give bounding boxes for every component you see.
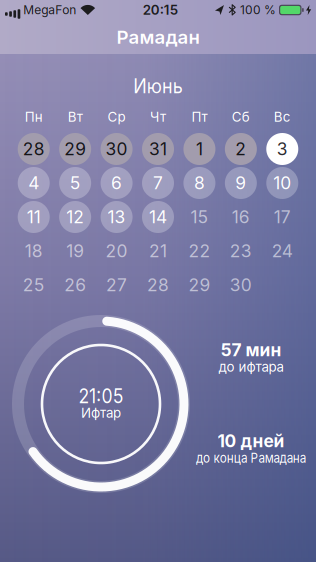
staticText: Вс [274, 109, 291, 125]
button[interactable]: 31 [137, 132, 179, 166]
staticText: Чт [150, 109, 166, 125]
button[interactable]: 2 [220, 132, 261, 166]
staticText: до ифтара [218, 359, 283, 375]
staticText: 22 [188, 241, 210, 261]
staticText: 11 [27, 207, 41, 227]
button[interactable]: 5 [54, 166, 96, 200]
button[interactable]: 4 [13, 166, 54, 200]
button[interactable]: 26 [54, 268, 96, 302]
button[interactable]: 17 [262, 200, 303, 234]
staticText: 31 [149, 139, 167, 159]
button[interactable]: 28 [13, 132, 54, 166]
staticText: Пт [191, 109, 207, 125]
staticText: 20 [106, 241, 128, 261]
staticText: 27 [106, 275, 127, 295]
staticText: 19 [66, 241, 84, 261]
staticText: 100 % [240, 3, 276, 17]
staticText: 29 [188, 275, 210, 295]
staticText: 57 мин [220, 340, 281, 360]
button[interactable]: 19 [54, 234, 96, 268]
staticText: 17 [274, 207, 291, 227]
staticText: 6 [111, 173, 122, 193]
staticText: 1 [196, 139, 203, 159]
button[interactable]: 18 [13, 234, 54, 268]
staticText: 14 [149, 207, 167, 227]
button[interactable]: 30 [96, 132, 137, 166]
staticText: Рамадан [116, 26, 199, 48]
button[interactable]: 16 [220, 200, 261, 234]
staticText: Вт [68, 109, 83, 125]
staticText: 7 [153, 173, 163, 193]
button[interactable]: 6 [96, 166, 137, 200]
staticText: 10 дней [217, 431, 284, 451]
staticText: 3 [277, 139, 288, 159]
staticText: 15 [190, 207, 208, 227]
button[interactable]: 3 [262, 132, 303, 166]
button[interactable]: 25 [13, 268, 54, 302]
button[interactable]: 20 [96, 234, 137, 268]
staticText: Июнь [130, 74, 185, 98]
staticText: 18 [25, 241, 43, 261]
button[interactable]: 8 [179, 166, 220, 200]
staticText: 29 [64, 139, 86, 159]
button[interactable]: 1 [179, 132, 220, 166]
button[interactable]: 30 [220, 268, 261, 302]
staticText: MegaFon [23, 3, 76, 17]
staticText: до конца Рамадана [188, 450, 313, 466]
button[interactable]: 10 [262, 166, 303, 200]
button[interactable]: 28 [137, 268, 179, 302]
button[interactable]: 12 [54, 200, 96, 234]
staticText: 10 [273, 173, 291, 193]
staticText: 21 [149, 241, 167, 261]
button[interactable]: 24 [262, 234, 303, 268]
button[interactable]: 27 [96, 268, 137, 302]
staticText: 20:15 [143, 2, 178, 18]
staticText: Ифтар [81, 405, 121, 421]
staticText: 9 [235, 173, 246, 193]
button[interactable]: 13 [96, 200, 137, 234]
staticText: 30 [106, 139, 128, 159]
staticText: 26 [64, 275, 86, 295]
staticText: 13 [108, 207, 126, 227]
staticText: 30 [230, 275, 252, 295]
button[interactable]: 23 [220, 234, 261, 268]
staticText: Сб [232, 109, 250, 125]
staticText: 23 [230, 241, 252, 261]
button[interactable]: 7 [137, 166, 179, 200]
staticText: 4 [28, 173, 39, 193]
staticText: 5 [70, 173, 81, 193]
staticText: 8 [194, 173, 205, 193]
button[interactable]: 29 [54, 132, 96, 166]
button[interactable]: 14 [137, 200, 179, 234]
staticText: 12 [66, 207, 84, 227]
button[interactable]: 21 [137, 234, 179, 268]
staticText: 28 [147, 275, 169, 295]
staticText: 2 [235, 139, 246, 159]
button[interactable]: 15 [179, 200, 220, 234]
button[interactable]: 29 [179, 268, 220, 302]
staticText: Ср [108, 109, 126, 125]
button[interactable]: 11 [13, 200, 54, 234]
staticText: 25 [23, 275, 45, 295]
staticText: 16 [232, 207, 250, 227]
button[interactable]: 22 [179, 234, 220, 268]
staticText: 24 [272, 241, 293, 261]
staticText: Пн [25, 109, 43, 125]
staticText: 28 [23, 139, 45, 159]
staticText: 21:05 [75, 384, 126, 408]
button[interactable]: 9 [220, 166, 261, 200]
